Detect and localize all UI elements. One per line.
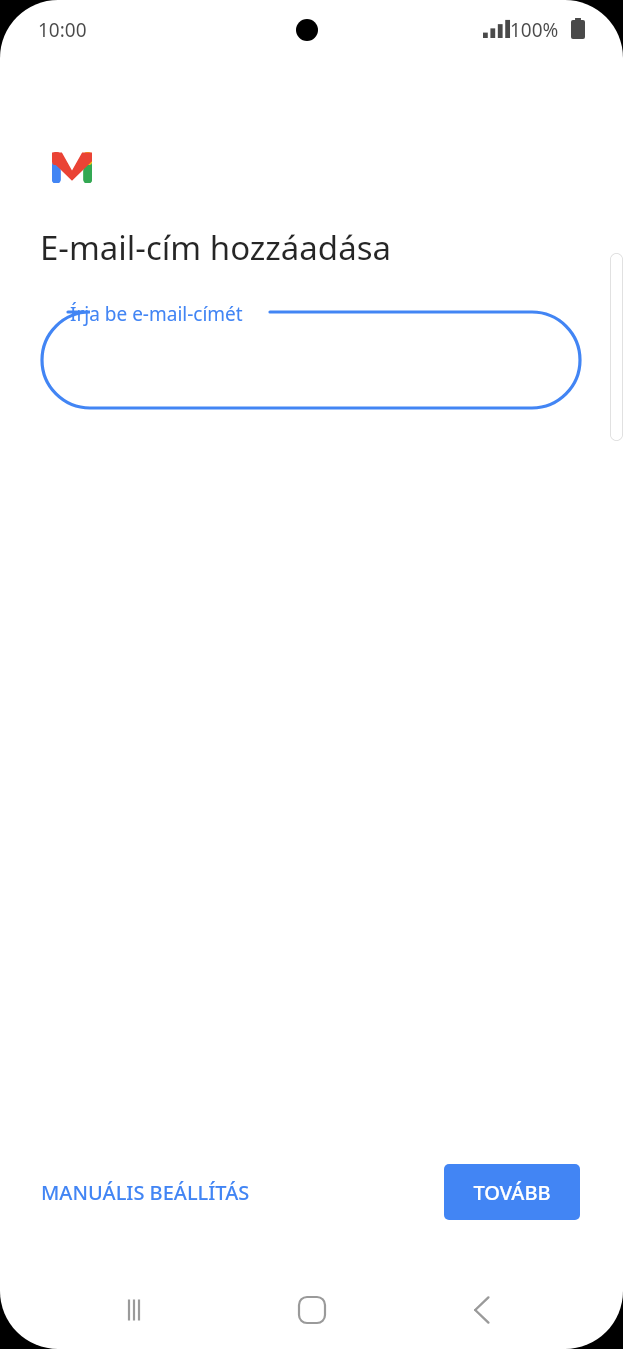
staticText: Írja be e-mail-címét — [70, 301, 243, 327]
staticText: TOVÁBB — [473, 1179, 551, 1206]
staticText: E-mail-cím hozzáadása — [40, 225, 391, 270]
staticText: 100% — [510, 17, 559, 43]
button[interactable]: Recent apps — [93, 1270, 185, 1349]
button[interactable]: Írja be e-mail-címét — [42, 298, 580, 408]
button[interactable]: TOVÁBB — [444, 1164, 580, 1220]
button[interactable]: Home — [266, 1270, 358, 1349]
button[interactable]: Back — [436, 1270, 528, 1349]
button[interactable]: MANUÁLIS BEÁLLÍTÁS — [30, 1169, 261, 1216]
staticText: MANUÁLIS BEÁLLÍTÁS — [41, 1179, 250, 1206]
staticText: 10:00 — [38, 17, 87, 43]
